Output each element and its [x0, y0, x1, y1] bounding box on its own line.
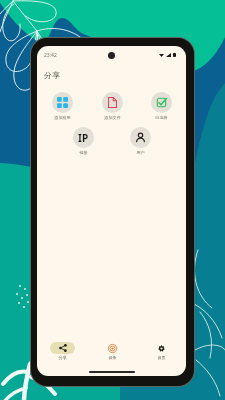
button[interactable]: Devices	[91, 342, 133, 360]
button[interactable]: 已选择	[140, 92, 182, 120]
staticText: 分享	[44, 70, 60, 80]
button[interactable]: 添加文件	[91, 92, 133, 120]
staticText: 添加文件	[104, 115, 121, 120]
button[interactable]: IP	[62, 127, 104, 155]
staticText: 分享	[58, 355, 67, 360]
staticText: 23:42	[44, 52, 57, 59]
staticText: IP	[78, 131, 89, 145]
button[interactable]: 用户	[119, 127, 161, 155]
staticText: 链接	[79, 150, 88, 155]
button[interactable]: Share	[41, 342, 83, 360]
staticText: 添加应用	[54, 115, 71, 120]
staticText: 设置	[157, 355, 166, 360]
staticText: 已选择	[155, 115, 168, 120]
staticText: 设备	[108, 355, 117, 360]
staticText: 用户	[136, 150, 145, 155]
button[interactable]: 添加应用	[41, 92, 83, 120]
button[interactable]: Settings	[140, 342, 182, 360]
